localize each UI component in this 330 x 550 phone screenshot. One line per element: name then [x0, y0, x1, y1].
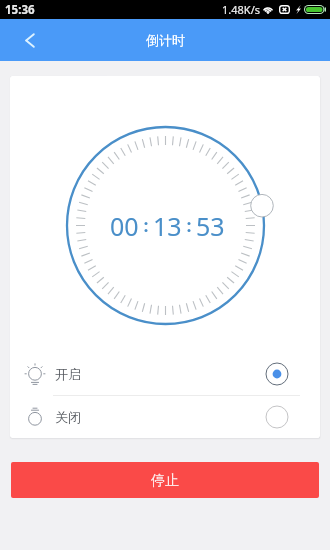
button[interactable]: 关闭	[10, 396, 320, 438]
staticText: 13	[153, 209, 182, 243]
staticText: 开启	[55, 366, 81, 382]
staticText: 关闭	[55, 409, 81, 425]
staticText: 00	[110, 209, 139, 243]
button[interactable]: 停止	[11, 462, 319, 498]
staticText: 53	[196, 209, 225, 243]
staticText: 倒计时	[146, 32, 185, 48]
staticText: 1.48K/s	[222, 2, 260, 17]
button[interactable]: Back	[0, 19, 50, 61]
staticText: 停止	[151, 472, 179, 490]
staticText: 15:36	[5, 2, 35, 18]
button[interactable]: 开启	[10, 353, 320, 395]
